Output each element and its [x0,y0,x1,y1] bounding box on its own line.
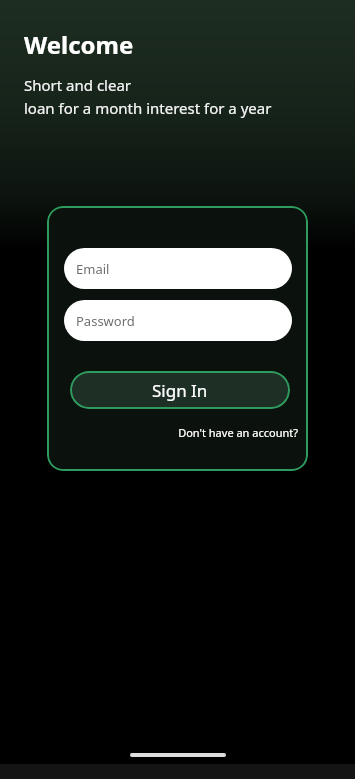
other: Home indicator [130,753,226,757]
button[interactable]: Password [64,300,292,341]
staticText: Short and clear loan for a month interes… [24,75,272,118]
staticText: Password [76,312,135,330]
button[interactable]: Email [64,248,292,289]
staticText: Sign In [152,379,208,402]
button[interactable]: Sign In [70,371,290,409]
staticText: Welcome [24,28,134,61]
button[interactable]: Don't have an account? [178,425,298,440]
staticText: Email [76,260,110,278]
staticText: Don't have an account? [178,425,298,440]
